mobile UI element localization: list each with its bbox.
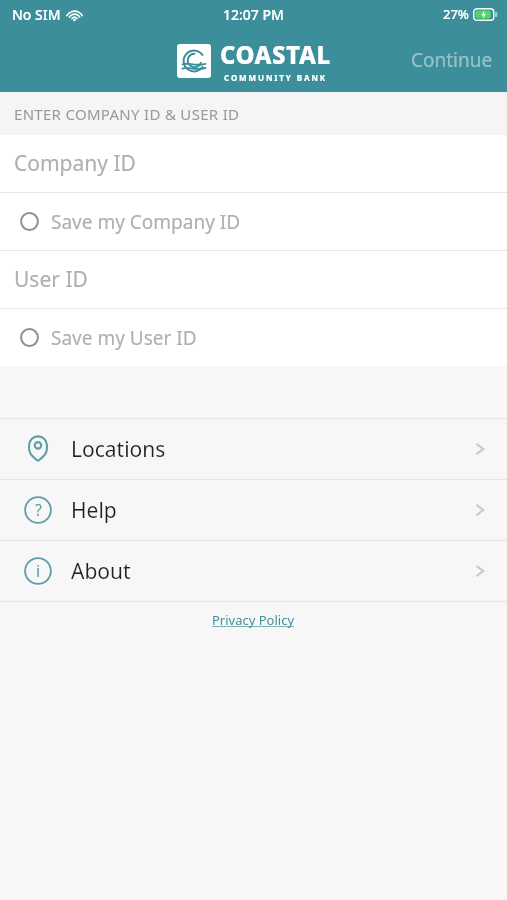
staticText: COMMUNITY BANK	[224, 72, 328, 83]
staticText: Locations	[71, 435, 166, 464]
button[interactable]: Locations	[0, 419, 507, 479]
staticText: Help	[71, 496, 117, 525]
staticText: ?	[35, 499, 42, 521]
staticText: No SIM	[12, 5, 61, 24]
other: Help	[24, 496, 52, 524]
button[interactable]: Help	[0, 480, 507, 540]
staticText: User ID	[14, 265, 88, 294]
staticText: ENTER COMPANY ID & USER ID	[14, 104, 240, 124]
staticText: i	[36, 560, 41, 582]
button[interactable]: Privacy Policy	[212, 611, 295, 629]
button[interactable]: About	[0, 541, 507, 601]
other: Locations	[24, 435, 52, 463]
staticText: Continue	[411, 47, 493, 73]
staticText: Save my User ID	[51, 325, 197, 351]
staticText: 27%	[443, 5, 469, 23]
staticText: COASTAL	[220, 38, 331, 71]
button[interactable]: Company ID	[0, 135, 507, 192]
button[interactable]: Continue	[397, 37, 507, 83]
staticText: 12:07 PM	[223, 5, 284, 24]
button[interactable]: Save my User ID	[0, 309, 507, 366]
staticText: About	[71, 557, 131, 586]
button[interactable]: Save my Company ID	[0, 193, 507, 250]
staticText: Save my Company ID	[51, 209, 241, 235]
button[interactable]: User ID	[0, 251, 507, 308]
staticText: Company ID	[14, 149, 136, 178]
other: About	[24, 557, 52, 585]
